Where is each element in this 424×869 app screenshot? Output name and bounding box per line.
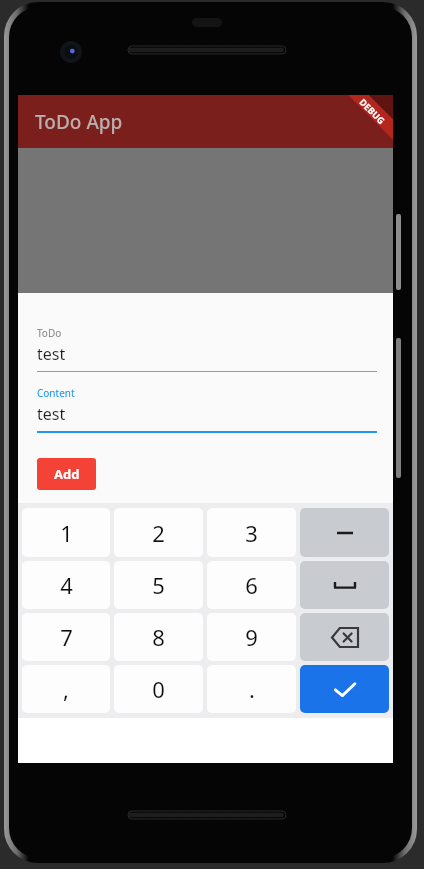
button[interactable]: 5 — [114, 561, 203, 609]
button[interactable]: Backspace — [300, 613, 389, 661]
button[interactable]: Space — [300, 561, 389, 609]
button[interactable]: , — [22, 665, 110, 713]
button[interactable]: . — [207, 665, 296, 713]
staticText: ToDo — [37, 326, 62, 340]
staticText: , — [63, 674, 69, 704]
button[interactable]: 1 — [22, 508, 110, 557]
staticText: Add — [54, 465, 80, 483]
button[interactable]: 9 — [207, 613, 296, 661]
button[interactable]: Content — [37, 386, 377, 433]
staticText: . — [249, 674, 255, 704]
staticText: DEBUG — [357, 96, 388, 126]
staticText: 6 — [245, 570, 258, 600]
staticText: 2 — [152, 518, 165, 548]
staticText: 8 — [152, 622, 165, 652]
staticText: 9 — [245, 622, 258, 652]
staticText: 3 — [245, 518, 258, 548]
button[interactable]: 8 — [114, 613, 203, 661]
button[interactable]: 3 — [207, 508, 296, 557]
button[interactable]: Minus — [300, 508, 389, 557]
staticText: test — [37, 403, 66, 425]
staticText: 1 — [60, 518, 73, 548]
staticText: ToDo App — [35, 109, 123, 135]
button[interactable]: 4 — [22, 561, 110, 609]
button[interactable]: 7 — [22, 613, 110, 661]
staticText: Content — [37, 386, 75, 400]
staticText: test — [37, 343, 66, 365]
staticText: 7 — [60, 622, 73, 652]
button[interactable]: 2 — [114, 508, 203, 557]
staticText: 5 — [152, 570, 165, 600]
staticText: 4 — [60, 570, 73, 600]
button[interactable]: 0 — [114, 665, 203, 713]
button[interactable]: Add — [37, 458, 96, 490]
button[interactable]: ToDo — [37, 326, 377, 372]
button[interactable]: 6 — [207, 561, 296, 609]
button[interactable]: Done — [300, 665, 389, 713]
staticText: 0 — [152, 674, 165, 704]
